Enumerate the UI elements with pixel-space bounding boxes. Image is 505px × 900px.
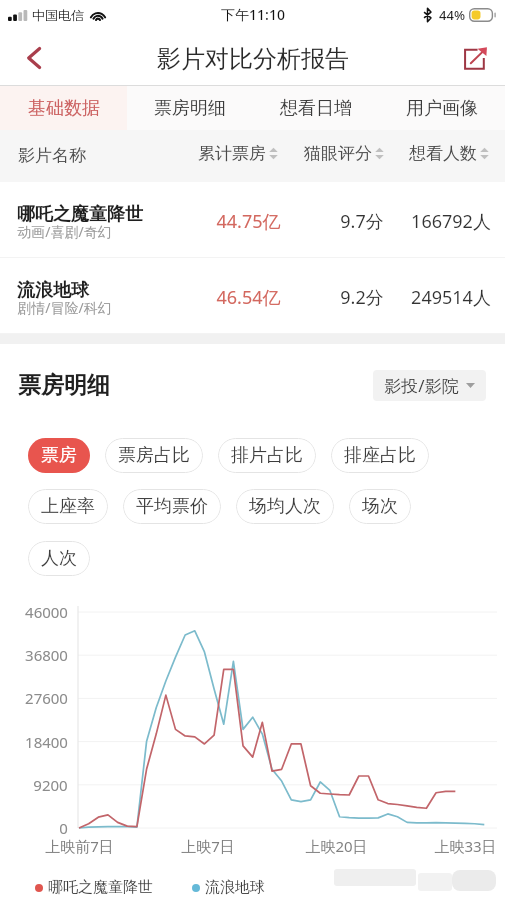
staticText: 0 — [59, 818, 68, 838]
staticText: 上映7日 — [181, 836, 235, 856]
staticText: 影投/影院 — [384, 374, 459, 397]
staticText: 票房 — [41, 444, 77, 467]
staticText: 44% — [439, 6, 465, 24]
button[interactable]: 上座率 — [28, 489, 108, 524]
button[interactable]: 场均人次 — [236, 489, 334, 524]
staticText: 影片名称 — [18, 145, 86, 166]
button[interactable]: 平均票价 — [123, 489, 221, 524]
staticText: 46000 — [25, 602, 68, 622]
staticText: 上座率 — [41, 495, 95, 518]
button[interactable]: 想看人数 — [409, 139, 489, 167]
staticText: 46.54亿 — [216, 285, 281, 310]
staticText: 排座占比 — [344, 444, 416, 467]
button[interactable]: Back — [0, 32, 58, 84]
staticText: 平均票价 — [136, 495, 208, 518]
staticText: 动画/喜剧/奇幻 — [17, 222, 112, 241]
staticText: 场均人次 — [249, 495, 321, 518]
staticText: 9200 — [33, 775, 68, 795]
staticText: 流浪地球 — [205, 878, 265, 897]
staticText: 剧情/冒险/科幻 — [17, 298, 112, 317]
button[interactable]: Share — [447, 32, 505, 84]
button[interactable]: 场次 — [349, 489, 411, 524]
button[interactable]: 排片占比 — [218, 438, 316, 473]
staticText: 9.2分 — [340, 285, 384, 310]
button[interactable]: 想看日增 — [253, 86, 379, 130]
staticText: 影片对比分析报告 — [157, 44, 349, 74]
button[interactable]: 票房明细 — [127, 86, 253, 130]
button[interactable]: 基础数据 — [0, 86, 127, 130]
staticText: 44.75亿 — [216, 209, 281, 234]
button[interactable]: 人次 — [28, 541, 90, 576]
button[interactable]: 票房 — [28, 438, 90, 473]
button[interactable]: 流浪地球 — [0, 258, 505, 334]
staticText: 票房占比 — [118, 444, 190, 467]
staticText: 上映33日 — [434, 836, 497, 856]
staticText: 18400 — [25, 732, 68, 752]
staticText: 猫眼评分 — [304, 143, 372, 164]
staticText: 249514人 — [411, 285, 491, 310]
staticText: 人次 — [41, 547, 77, 570]
staticText: 流浪地球 — [17, 279, 89, 302]
staticText: 下午11:10 — [221, 5, 285, 24]
staticText: 用户画像 — [406, 97, 478, 120]
button[interactable]: 猫眼评分 — [304, 139, 384, 167]
button[interactable]: 排座占比 — [331, 438, 429, 473]
staticText: 票房明细 — [154, 97, 226, 120]
staticText: 基础数据 — [28, 97, 100, 120]
staticText: 27600 — [25, 688, 68, 708]
staticText: 排片占比 — [231, 444, 303, 467]
button[interactable]: 哪吒之魔童降世 — [0, 182, 505, 258]
staticText: 票房明细 — [18, 371, 110, 400]
button[interactable]: 票房占比 — [105, 438, 203, 473]
button[interactable]: 累计票房 — [198, 139, 278, 167]
staticText: 上映前7日 — [45, 836, 114, 856]
staticText: 场次 — [362, 495, 398, 518]
staticText: 9.7分 — [340, 209, 384, 234]
staticText: 上映20日 — [305, 836, 368, 856]
staticText: 累计票房 — [198, 143, 266, 164]
staticText: 想看人数 — [409, 143, 477, 164]
staticText: 哪吒之魔童降世 — [48, 878, 153, 897]
button[interactable]: 用户画像 — [379, 86, 505, 130]
staticText: 36800 — [25, 645, 68, 665]
staticText: 想看日增 — [280, 97, 352, 120]
staticText: 哪吒之魔童降世 — [17, 203, 143, 226]
staticText: 166792人 — [411, 209, 491, 234]
staticText: 中国电信 — [32, 7, 84, 23]
button[interactable]: 影投/影院 — [373, 370, 486, 401]
